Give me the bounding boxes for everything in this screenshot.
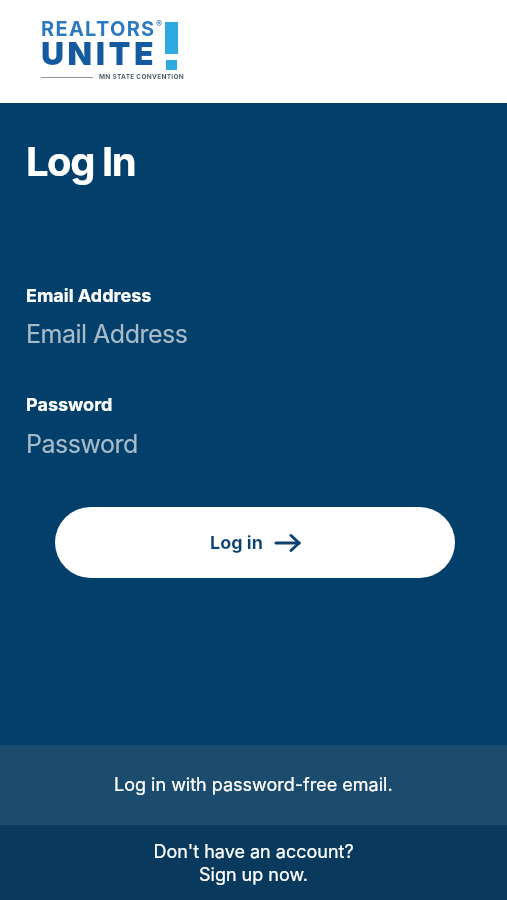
staticText: Log In: [26, 137, 136, 185]
staticText: Don't have an account? Sign up now.: [153, 841, 354, 885]
staticText: MN STATE CONVENTION: [99, 73, 185, 81]
staticText: Log in: [210, 532, 263, 554]
button[interactable]: Log in: [55, 507, 455, 578]
button[interactable]: Log in with password-free email.: [0, 745, 507, 825]
staticText: ®: [156, 18, 162, 29]
button[interactable]: Don't have an account? Sign up now.: [0, 825, 507, 900]
staticText: UNITE: [41, 34, 158, 73]
button[interactable]: Email Address: [26, 319, 481, 359]
staticText: Password: [26, 394, 113, 416]
staticText: REALTORS: [41, 17, 156, 41]
staticText: Email Address: [26, 285, 152, 307]
staticText: Password: [26, 429, 138, 459]
staticText: Email Address: [26, 319, 188, 349]
button[interactable]: Password: [26, 429, 481, 469]
staticText: Log in with password-free email.: [114, 774, 393, 796]
